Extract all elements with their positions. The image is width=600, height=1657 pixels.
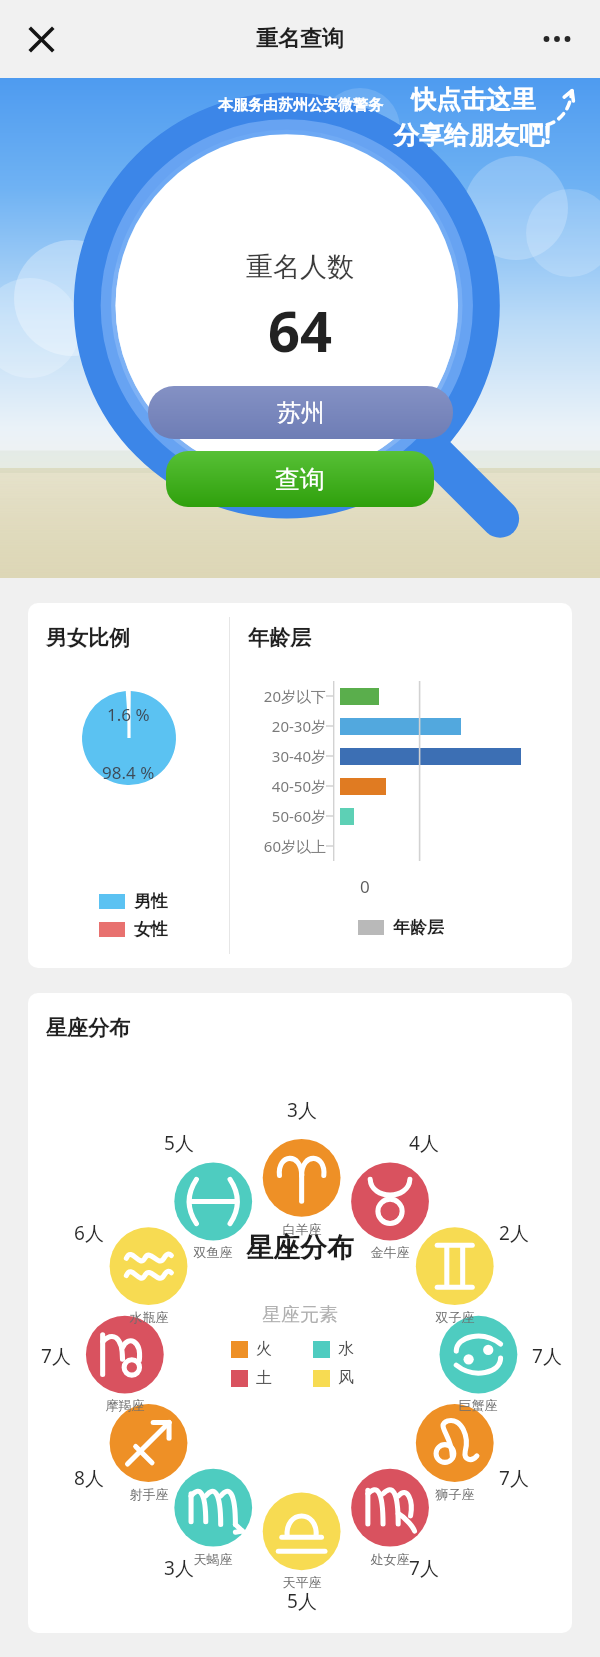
staticText: 30-40岁 [234, 746, 326, 766]
staticText: 男女比例 [46, 625, 130, 651]
staticText: 处女座 [364, 1551, 416, 1567]
staticText: 1.6 % [107, 703, 150, 726]
button[interactable]: 查询 [166, 451, 434, 507]
staticText: 星座分布 [246, 1231, 354, 1265]
staticText: 7人 [490, 1465, 538, 1491]
staticText: 天平座 [276, 1574, 328, 1590]
staticText: 巨蟹座 [452, 1397, 504, 1413]
staticText: 5人 [155, 1130, 203, 1156]
staticText: 水 [338, 1339, 354, 1359]
staticText: 分享给朋友吧! [394, 117, 552, 151]
button[interactable]: Close [14, 12, 68, 66]
staticText: 女性 [134, 919, 168, 940]
staticText: 风 [338, 1368, 354, 1388]
staticText: 40-50岁 [234, 776, 326, 796]
staticText: 年龄层 [248, 625, 311, 651]
staticText: 摩羯座 [99, 1397, 151, 1413]
staticText: 20岁以下 [234, 686, 326, 706]
staticText: 双鱼座 [187, 1244, 239, 1260]
staticText: 男性 [134, 891, 168, 912]
button[interactable]: 苏州 [148, 386, 453, 439]
staticText: 本服务由苏州公安微警务 [218, 96, 383, 115]
staticText: 20-30岁 [234, 716, 326, 736]
staticText: 土 [256, 1368, 272, 1388]
staticText: 火 [256, 1339, 272, 1359]
staticText: 8人 [65, 1465, 113, 1491]
staticText: 6人 [65, 1220, 113, 1246]
staticText: 射手座 [123, 1486, 175, 1502]
staticText: 重名人数 [246, 250, 354, 284]
staticText: 狮子座 [429, 1486, 481, 1502]
staticText: 苏州 [277, 398, 325, 428]
staticText: 白羊座 [276, 1221, 328, 1237]
staticText: 0 [360, 875, 370, 898]
staticText: 双子座 [429, 1309, 481, 1325]
staticText: 50-60岁 [234, 806, 326, 826]
staticText: 3人 [278, 1097, 326, 1123]
staticText: 金牛座 [364, 1244, 416, 1260]
staticText: 3人 [155, 1555, 203, 1581]
button[interactable]: More options [530, 12, 584, 66]
staticText: 重名查询 [256, 25, 344, 53]
staticText: 天蝎座 [187, 1551, 239, 1567]
staticText: 星座元素 [262, 1303, 338, 1327]
staticText: 98.4 % [102, 761, 155, 784]
staticText: 2人 [490, 1220, 538, 1246]
staticText: 7人 [400, 1555, 448, 1581]
staticText: 水瓶座 [123, 1309, 175, 1325]
button[interactable]: 男女比例 [28, 603, 572, 968]
staticText: 60岁以上 [234, 836, 326, 856]
staticText: 星座分布 [46, 1015, 130, 1041]
staticText: 7人 [32, 1343, 80, 1369]
button[interactable]: 星座分布 [28, 993, 572, 1633]
staticText: 4人 [400, 1130, 448, 1156]
staticText: 5人 [278, 1588, 326, 1614]
staticText: 64 [268, 292, 333, 368]
staticText: 快点击这里 [411, 84, 536, 115]
staticText: 7人 [523, 1343, 571, 1369]
staticText: 年龄层 [393, 917, 444, 938]
staticText: 查询 [275, 464, 325, 495]
